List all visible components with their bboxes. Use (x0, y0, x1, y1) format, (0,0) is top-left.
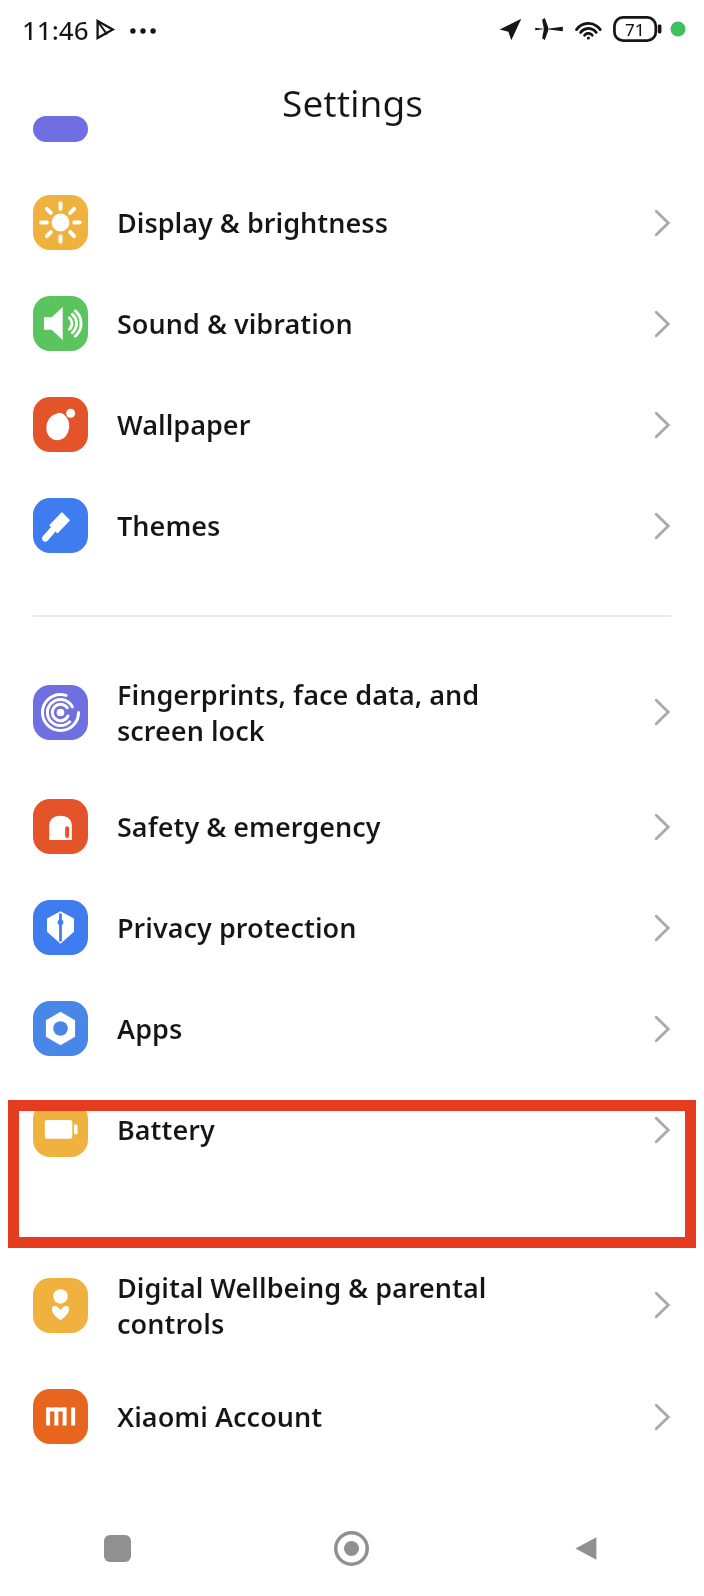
button[interactable]: Home (234, 1500, 469, 1596)
button[interactable]: Apps (0, 978, 704, 1079)
staticText: Apps (117, 1010, 641, 1047)
staticText: Display & brightness (117, 204, 641, 241)
button[interactable]: Sound & vibration (0, 273, 704, 374)
staticText: 11:46 (22, 12, 89, 47)
button[interactable]: Fingerprints, face data, and screen lock (0, 659, 704, 765)
button[interactable]: Battery (0, 1079, 704, 1180)
staticText: 71 (625, 18, 645, 41)
staticText: Safety & emergency (117, 808, 641, 845)
button[interactable]: Recent apps (0, 1500, 234, 1596)
button[interactable]: Wallpaper (0, 374, 704, 475)
button[interactable]: Safety & emergency (0, 776, 704, 877)
staticText: Privacy protection (117, 909, 641, 946)
staticText: Wallpaper (117, 406, 641, 443)
button[interactable]: Back (469, 1500, 704, 1596)
staticText: Sound & vibration (117, 305, 641, 342)
button[interactable]: Xiaomi Account (0, 1366, 704, 1467)
button[interactable]: Display & brightness (0, 172, 704, 273)
staticText: Digital Wellbeing & parental controls (117, 1269, 641, 1342)
staticText: Xiaomi Account (117, 1398, 641, 1435)
staticText: Settings (282, 77, 423, 127)
staticText: Themes (117, 507, 641, 544)
button[interactable]: Themes (0, 475, 704, 576)
staticText: Fingerprints, face data, and screen lock (117, 676, 641, 749)
button[interactable]: Privacy protection (0, 877, 704, 978)
button[interactable]: Digital Wellbeing & parental controls (0, 1252, 704, 1358)
staticText: Battery (117, 1111, 641, 1148)
